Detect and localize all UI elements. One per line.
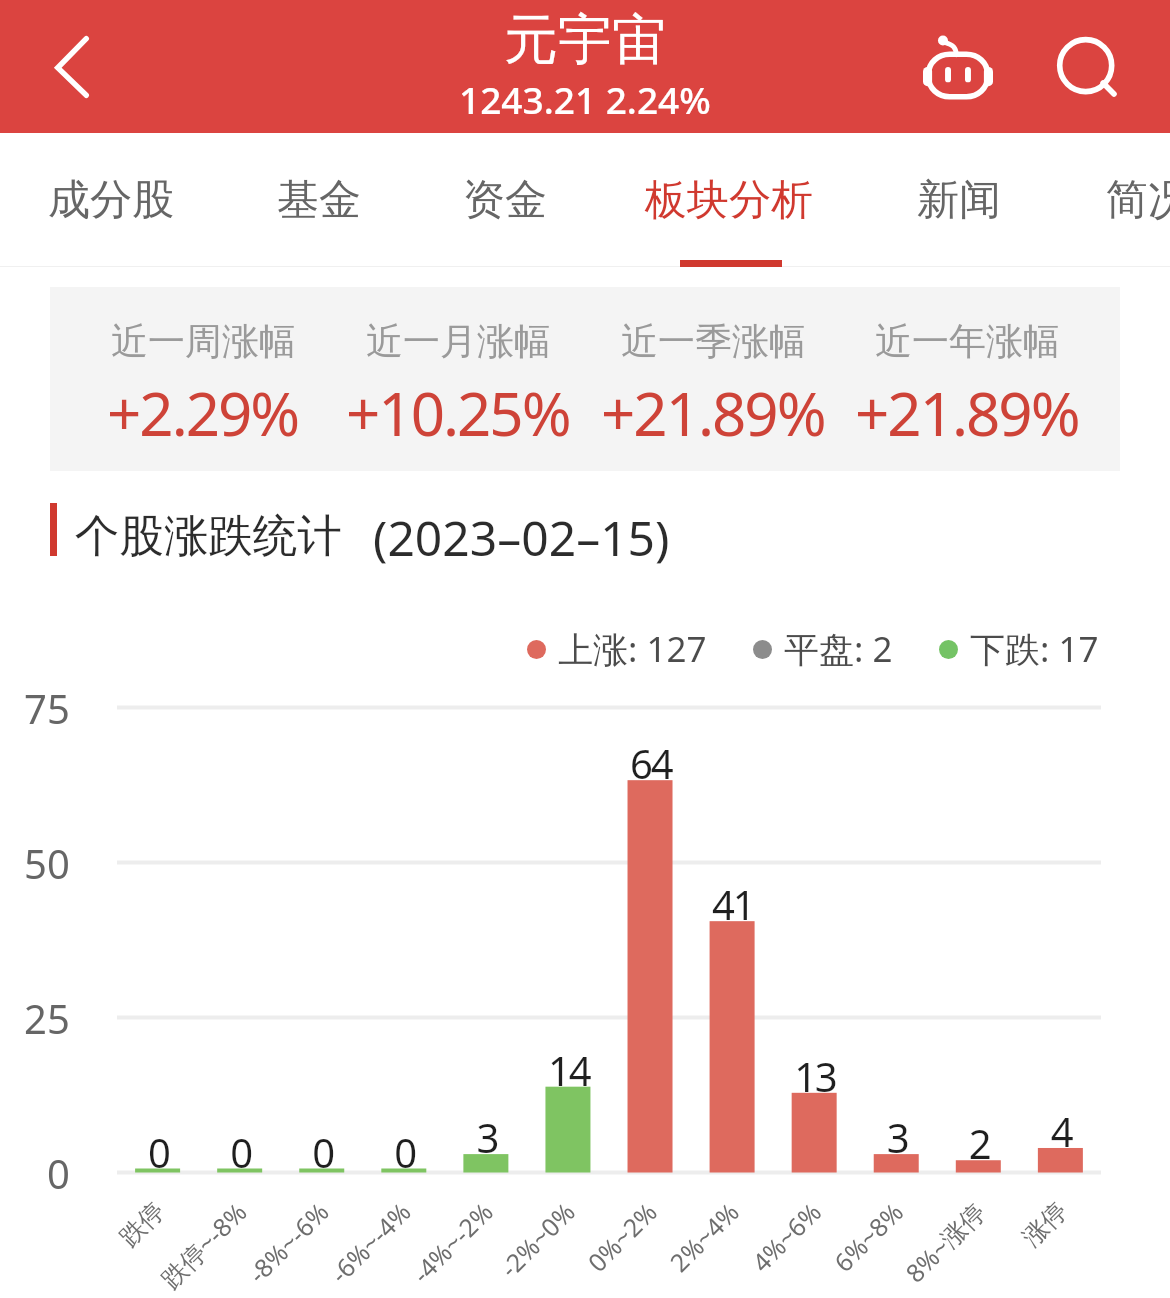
button[interactable]: 0%~2%: 64 (609, 700, 691, 1172)
staticText: 上涨: 127 (558, 625, 707, 673)
button[interactable]: AI Assistant (903, 0, 1013, 133)
button[interactable]: 基金 (239, 133, 399, 266)
button[interactable]: 8%~涨停: 2 (937, 700, 1019, 1172)
button[interactable]: 平盘: 2 (753, 625, 893, 673)
staticText: 简况 (1106, 174, 1170, 227)
button[interactable]: 涨停: 4 (1019, 700, 1101, 1172)
staticText: 新闻 (917, 174, 1001, 227)
button[interactable]: 资金 (425, 133, 585, 266)
staticText: (2023–02–15) (373, 505, 670, 570)
button[interactable]: -2%~0%: 14 (527, 700, 609, 1172)
staticText: 成分股 (48, 174, 174, 227)
staticText: 1243.21 2.24% (459, 74, 711, 124)
staticText: 元宇宙 (504, 6, 666, 74)
button[interactable]: -4%~-2%: 3 (445, 700, 527, 1172)
button[interactable]: 近一年涨幅 (842, 287, 1092, 471)
button[interactable]: Search (1032, 0, 1142, 133)
staticText: 个股涨跌统计 (75, 508, 342, 564)
staticText: 近一年涨幅 (875, 318, 1060, 365)
button[interactable]: -6%~-4%: 0 (363, 700, 445, 1172)
staticText: 下跌: 17 (970, 625, 1099, 673)
staticText: +21.89% (601, 372, 825, 454)
staticText: 资金 (463, 174, 547, 227)
staticText: 近一季涨幅 (621, 318, 806, 365)
button[interactable]: 上涨: 127 (527, 625, 707, 673)
button[interactable]: 2%~4%: 41 (691, 700, 773, 1172)
button[interactable]: 6%~8%: 3 (855, 700, 937, 1172)
button[interactable]: 简况 (1068, 133, 1170, 266)
button[interactable]: 4%~6%: 13 (773, 700, 855, 1172)
staticText: 近一周涨幅 (111, 318, 296, 365)
staticText: +21.89% (855, 372, 1079, 454)
staticText: 近一月涨幅 (366, 318, 551, 365)
button[interactable]: 下跌: 17 (939, 625, 1099, 673)
staticText: 基金 (277, 174, 361, 227)
button[interactable]: 跌停: 0 (117, 700, 199, 1172)
button[interactable]: Back (16, 0, 128, 133)
button[interactable]: 近一周涨幅 (78, 287, 328, 471)
button[interactable]: 近一月涨幅 (333, 287, 583, 471)
staticText: +10.25% (346, 372, 570, 454)
button[interactable]: 成分股 (31, 133, 191, 266)
staticText: 板块分析 (645, 174, 813, 227)
button[interactable]: 新闻 (879, 133, 1039, 266)
button[interactable]: -8%~-6%: 0 (281, 700, 363, 1172)
button[interactable]: 近一季涨幅 (588, 287, 838, 471)
staticText: +2.29% (107, 372, 299, 454)
staticText: 平盘: 2 (784, 625, 893, 673)
button[interactable]: 板块分析 (629, 133, 829, 266)
button[interactable]: 跌停~-8%: 0 (199, 700, 281, 1172)
